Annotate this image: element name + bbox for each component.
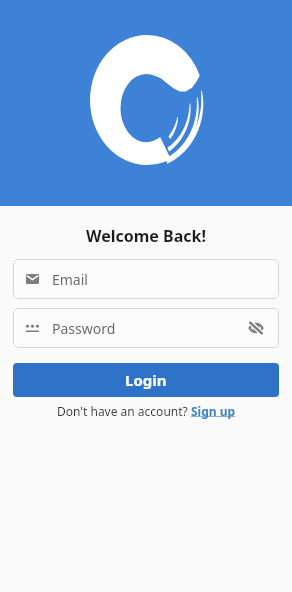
staticText: Welcome Back!: [0, 225, 292, 247]
button[interactable]: Login: [13, 363, 279, 397]
staticText: Don't have an account?: [57, 403, 191, 419]
button[interactable]: Password: [13, 308, 279, 348]
staticText: Password: [52, 319, 116, 338]
staticText: Email: [52, 270, 88, 289]
button[interactable]: Email: [13, 259, 279, 299]
button[interactable]: Sign up: [191, 403, 236, 419]
staticText: Sign up: [191, 403, 236, 419]
staticText: Login: [125, 370, 167, 390]
button[interactable]: Show password: [246, 318, 266, 338]
